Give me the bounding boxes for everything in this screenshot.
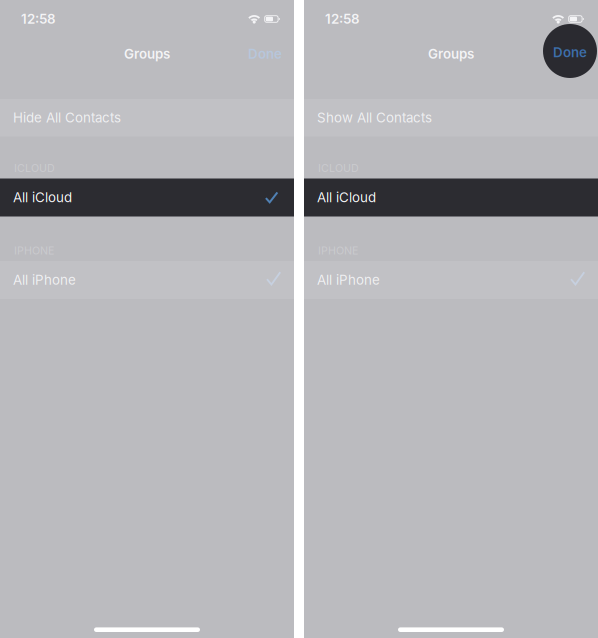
staticText: Hide All Contacts xyxy=(13,110,121,126)
button[interactable]: Done xyxy=(534,39,586,69)
staticText: Show All Contacts xyxy=(317,110,432,126)
staticText: All iCloud xyxy=(317,189,376,205)
staticText: Done xyxy=(552,46,586,62)
staticText: All iPhone xyxy=(13,272,76,288)
staticText: 12:58 xyxy=(21,11,56,27)
button[interactable]: Show All Contacts xyxy=(304,99,598,136)
button[interactable]: All iCloud xyxy=(0,178,294,216)
button[interactable]: Done xyxy=(544,39,596,65)
button[interactable]: All iPhone xyxy=(304,261,598,299)
button[interactable]: All iCloud xyxy=(304,178,598,216)
button[interactable]: All iPhone xyxy=(0,261,294,299)
staticText: IPHONE xyxy=(14,244,54,257)
button[interactable]: Done xyxy=(230,39,282,69)
staticText: All iPhone xyxy=(317,272,380,288)
staticText: ICLOUD xyxy=(318,162,359,174)
staticText: Groups xyxy=(428,46,474,62)
staticText: IPHONE xyxy=(318,244,358,257)
staticText: 12:58 xyxy=(325,11,360,27)
staticText: Done xyxy=(248,46,282,62)
staticText: All iCloud xyxy=(13,189,72,205)
staticText: ICLOUD xyxy=(14,162,55,174)
staticText: Done xyxy=(553,44,587,60)
button[interactable]: Hide All Contacts xyxy=(0,99,294,136)
staticText: Groups xyxy=(124,46,170,62)
